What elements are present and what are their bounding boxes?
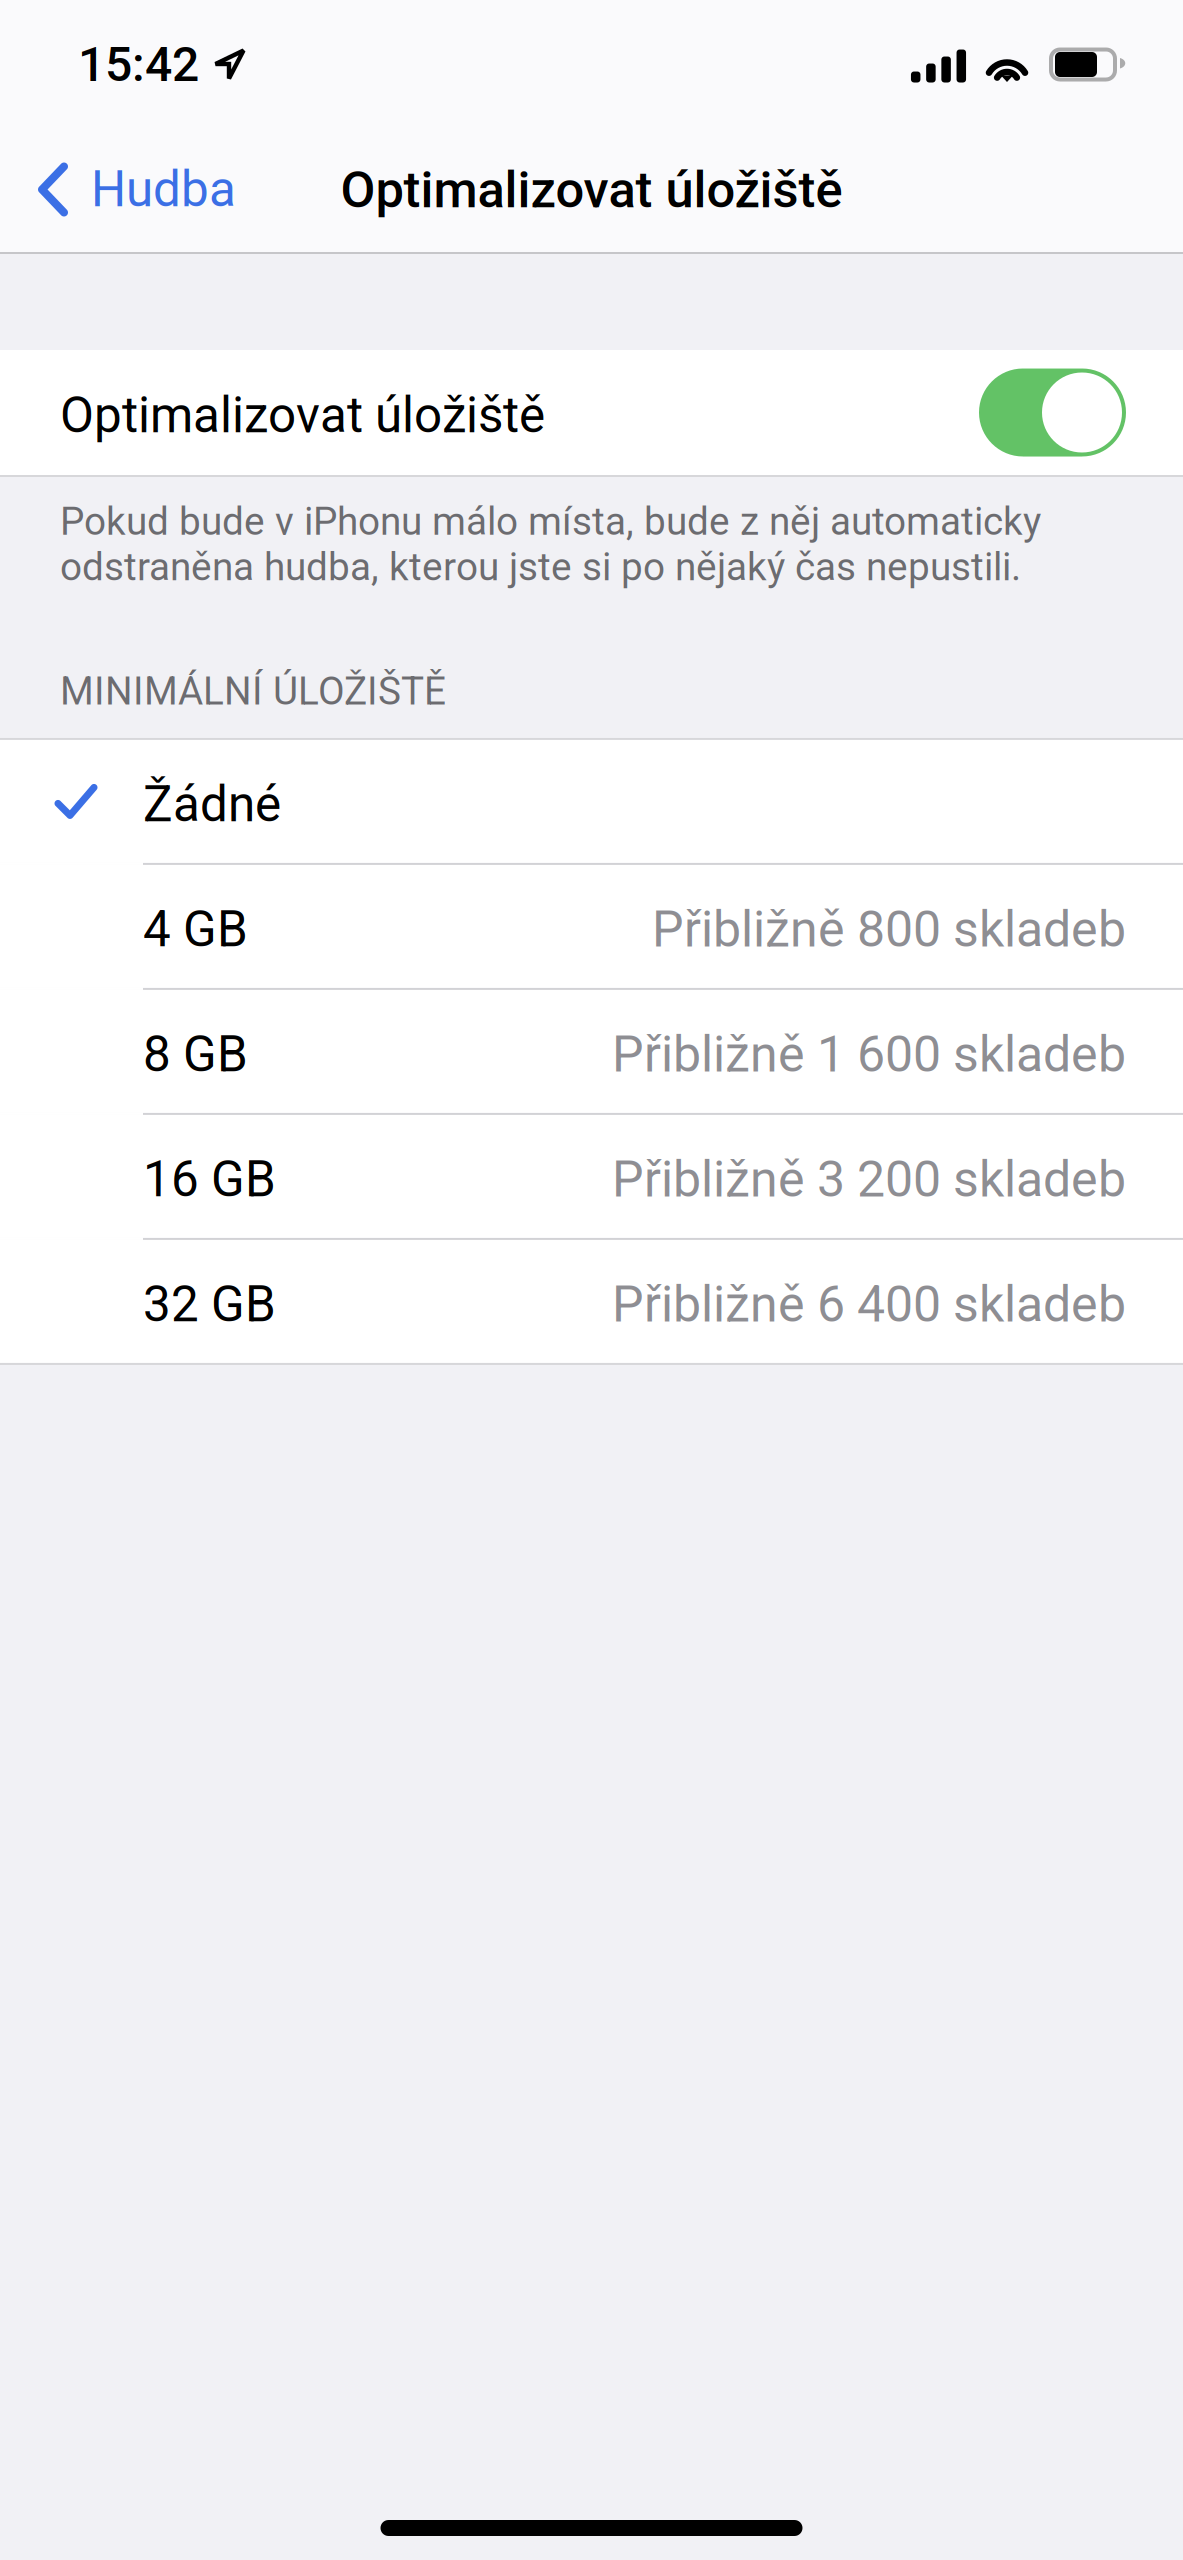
staticText: 32 GB bbox=[143, 1275, 276, 1333]
button[interactable]: 4 GB bbox=[0, 865, 1183, 988]
staticText: MINIMÁLNÍ ÚLOŽIŠTĚ bbox=[60, 669, 446, 714]
staticText: Přibližně 1 600 skladeb bbox=[612, 1025, 1126, 1084]
staticText: Optimalizovat úložiště bbox=[340, 160, 842, 220]
staticText: Žádné bbox=[143, 775, 281, 833]
button[interactable]: Hudba bbox=[0, 135, 250, 252]
staticText: 16 GB bbox=[143, 1150, 276, 1208]
button[interactable]: 16 GB bbox=[0, 1115, 1183, 1238]
staticText: Hudba bbox=[91, 161, 236, 218]
button[interactable]: 32 GB bbox=[0, 1240, 1183, 1363]
staticText: 4 GB bbox=[143, 900, 248, 958]
button[interactable]: Optimalizovat úložiště bbox=[0, 350, 1183, 475]
staticText: Pokud bude v iPhonu málo místa, bude z n… bbox=[60, 499, 1041, 590]
button[interactable]: 8 GB bbox=[0, 990, 1183, 1113]
staticText: Přibližně 3 200 skladeb bbox=[612, 1150, 1126, 1209]
staticText: 15:42 bbox=[78, 36, 199, 93]
staticText: Přibližně 800 skladeb bbox=[652, 900, 1126, 959]
staticText: 8 GB bbox=[143, 1025, 248, 1083]
staticText: Optimalizovat úložiště bbox=[60, 387, 545, 444]
button[interactable]: Žádné bbox=[0, 740, 1183, 863]
staticText: Přibližně 6 400 skladeb bbox=[612, 1275, 1126, 1334]
